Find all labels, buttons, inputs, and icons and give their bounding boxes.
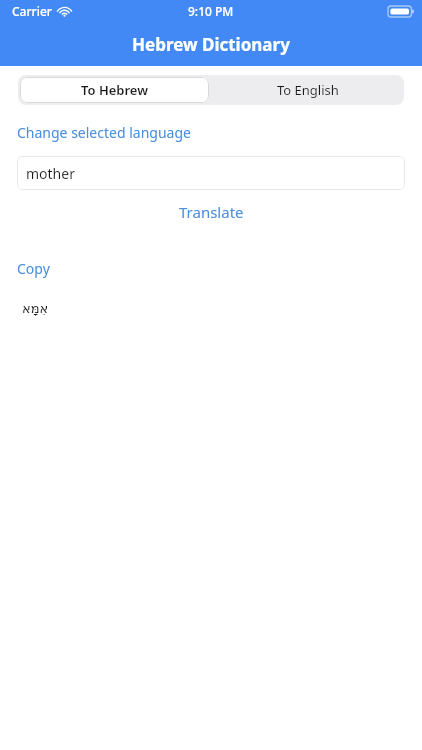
staticText: Translate [179, 202, 244, 222]
other: Battery full [388, 6, 414, 17]
button[interactable]: Change selected language [17, 123, 191, 142]
staticText: Copy [17, 259, 50, 278]
staticText: To Hebrew [81, 81, 148, 99]
staticText: אִמָּא [22, 301, 49, 316]
button[interactable]: mother [17, 156, 405, 190]
button[interactable]: Copy [17, 259, 50, 278]
staticText: Change selected language [17, 123, 191, 142]
other: Wi-Fi signal [57, 6, 72, 17]
staticText: Hebrew Dictionary [132, 33, 290, 56]
staticText: mother [26, 164, 75, 183]
button[interactable]: Translate [0, 199, 422, 225]
staticText: Carrier [12, 3, 52, 19]
button[interactable]: To Hebrew [20, 77, 209, 103]
button[interactable]: To English [211, 75, 404, 105]
staticText: To English [277, 81, 339, 99]
staticText: 9:10 PM [188, 3, 234, 19]
